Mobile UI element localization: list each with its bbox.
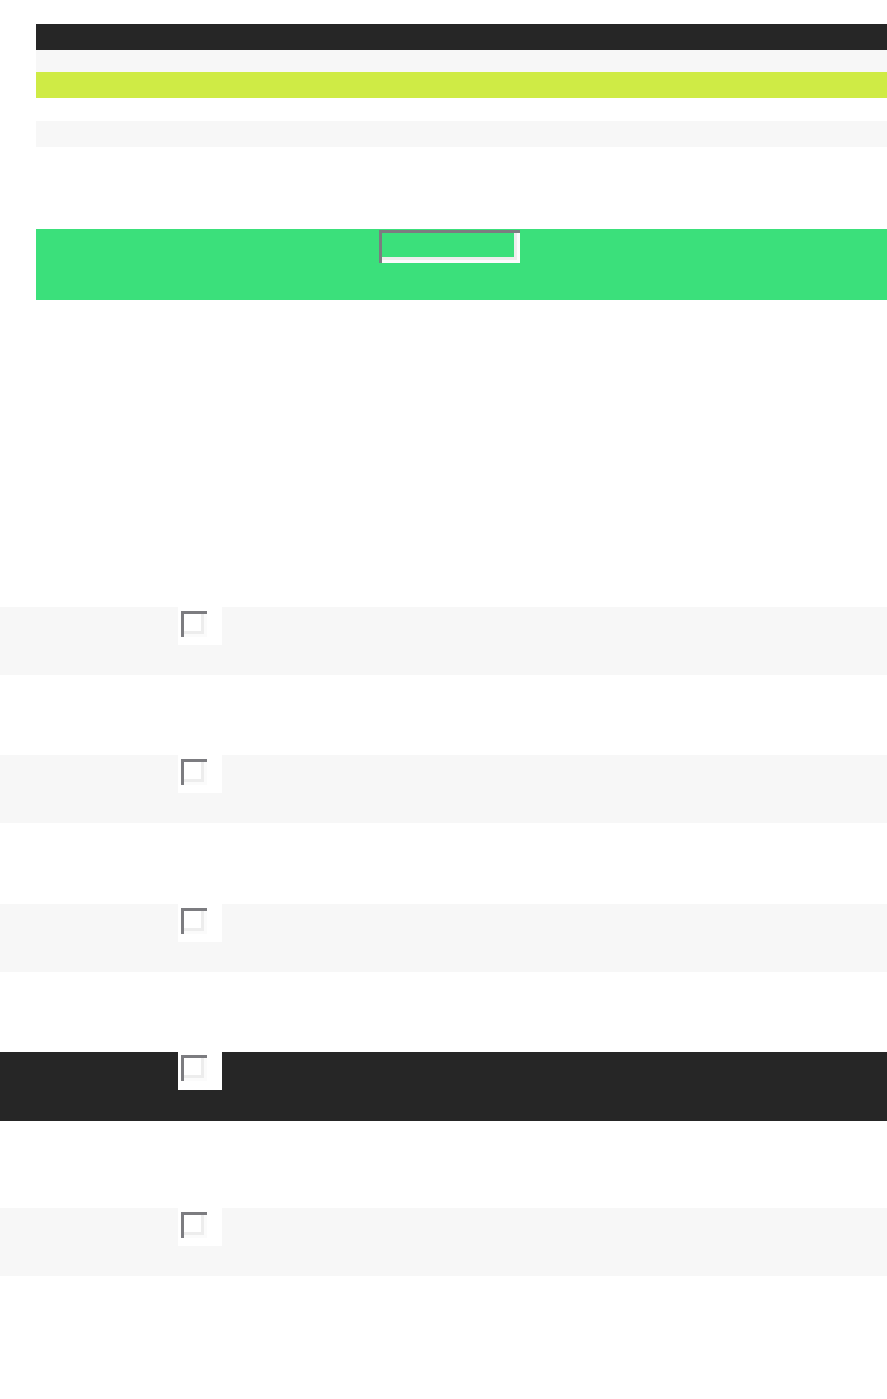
- button[interactable]: Option 1 checkbox: [181, 611, 207, 637]
- button[interactable]: Option 5 checkbox: [181, 1212, 207, 1238]
- button[interactable]: Option 1 checkbox: [0, 607, 887, 675]
- button[interactable]: Option 5 checkbox: [0, 1208, 887, 1276]
- button[interactable]: Option 4 checkbox: [181, 1055, 207, 1081]
- button[interactable]: Option 4 checkbox: [0, 1052, 887, 1121]
- button[interactable]: Option 2 checkbox: [0, 755, 887, 823]
- button[interactable]: Submit: [379, 230, 520, 263]
- button[interactable]: Option 3 checkbox: [0, 904, 887, 972]
- button[interactable]: Option 2 checkbox: [181, 759, 207, 785]
- button[interactable]: Option 3 checkbox: [181, 908, 207, 934]
